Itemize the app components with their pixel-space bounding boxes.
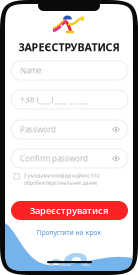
staticText: Confirm password bbox=[20, 153, 88, 164]
staticText: Name bbox=[20, 65, 42, 76]
staticText: +38 (___) ___ __ __ bbox=[20, 94, 87, 105]
button[interactable]: Зареєструватися bbox=[11, 201, 128, 220]
staticText: Зареєструватися bbox=[30, 204, 109, 217]
staticText: ЗАРЕЄСТРУВАТИСЯ bbox=[18, 40, 119, 54]
button[interactable]: +38 (___) ___ __ __ bbox=[11, 90, 128, 109]
button[interactable]: Пропустити на крок bbox=[5, 228, 133, 237]
button[interactable]: Name bbox=[11, 61, 128, 80]
staticText: Password bbox=[20, 124, 56, 135]
button[interactable]: Password bbox=[11, 120, 128, 139]
staticText: З умовами конфіденційності та обробки пе… bbox=[24, 172, 100, 186]
button[interactable]: З умовами конфіденційності та обробки пе… bbox=[14, 172, 124, 186]
staticText: Пропустити на крок bbox=[36, 228, 101, 237]
button[interactable]: Confirm password bbox=[11, 149, 128, 168]
